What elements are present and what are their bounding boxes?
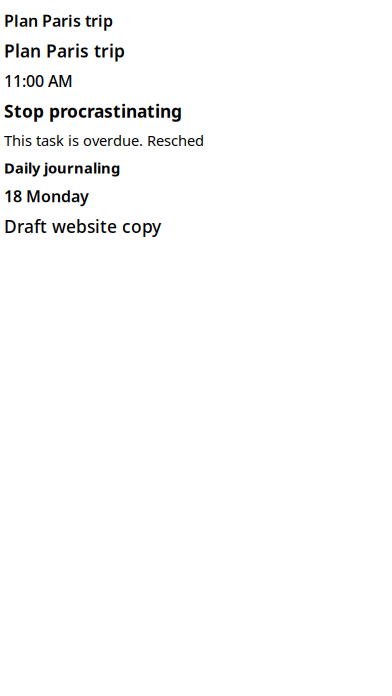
staticText: 18 Monday xyxy=(4,185,89,207)
staticText: 11:00 AM xyxy=(4,70,73,91)
staticText: Stop procrastinating xyxy=(4,99,182,122)
staticText: Plan Paris trip xyxy=(4,39,125,62)
staticText: Daily journaling xyxy=(4,158,120,177)
staticText: Plan Paris trip xyxy=(4,10,113,31)
staticText: This task is overdue. Resched xyxy=(4,130,204,150)
staticText: Draft website copy xyxy=(4,215,161,238)
